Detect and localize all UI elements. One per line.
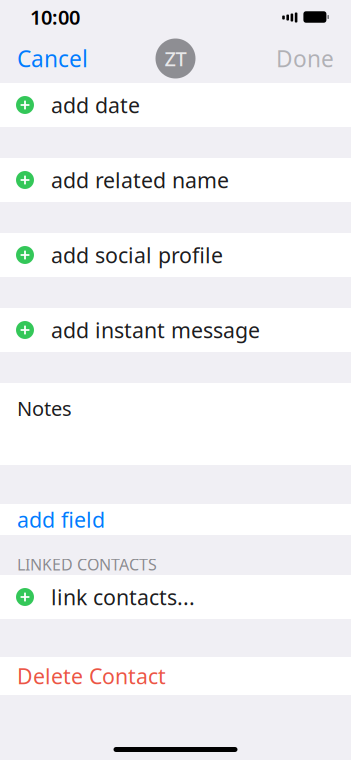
staticText: add related name	[51, 166, 229, 194]
staticText: add date	[51, 91, 140, 119]
staticText: add field	[17, 505, 105, 534]
staticText: Cancel	[17, 43, 88, 73]
button[interactable]: Cancel	[0, 35, 88, 81]
button[interactable]: add date	[0, 83, 351, 127]
staticText: 10:00	[30, 4, 80, 30]
button[interactable]: Done	[276, 35, 351, 81]
button[interactable]: Contact photo	[155, 38, 195, 78]
staticText: Done	[276, 43, 334, 73]
staticText: link contacts...	[51, 583, 195, 611]
staticText: LINKED CONTACTS	[17, 554, 157, 575]
button[interactable]: Delete Contact	[0, 657, 351, 695]
button[interactable]: Notes	[0, 383, 351, 465]
staticText: Delete Contact	[17, 662, 166, 690]
staticText: Notes	[17, 395, 72, 422]
button[interactable]: add related name	[0, 158, 351, 202]
staticText: add social profile	[51, 241, 223, 269]
button[interactable]: add instant message	[0, 308, 351, 352]
staticText: add instant message	[51, 316, 260, 344]
button[interactable]: add social profile	[0, 233, 351, 277]
staticText: ZT	[164, 45, 186, 72]
button[interactable]: link contacts...	[0, 575, 351, 619]
button[interactable]: add field	[0, 504, 351, 535]
